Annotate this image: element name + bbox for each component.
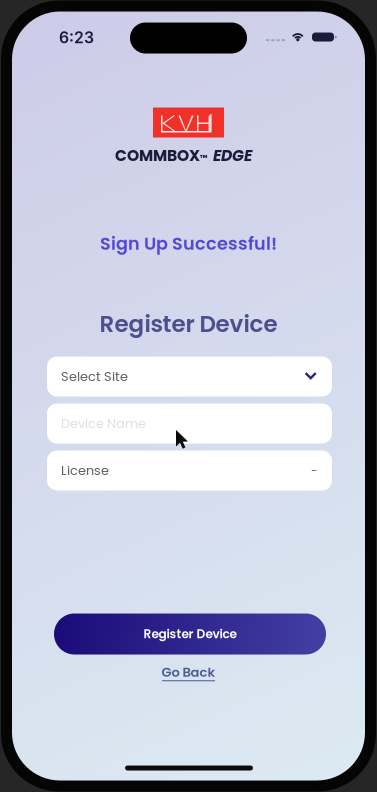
staticText: ™: [200, 152, 208, 164]
staticText: COMMBOX: [115, 145, 200, 166]
staticText: License: [61, 461, 109, 479]
staticText: Register Device: [99, 308, 277, 340]
button[interactable]: Device Name: [47, 403, 332, 443]
staticText: Device Name: [61, 414, 146, 432]
button[interactable]: Register Device: [54, 613, 326, 654]
button[interactable]: License: [47, 450, 332, 490]
staticText: -: [311, 462, 318, 479]
staticText: 6:23: [59, 28, 94, 47]
button[interactable]: Select Site: [47, 356, 332, 396]
staticText: EDGE: [213, 145, 252, 166]
staticText: Select Site: [61, 367, 128, 385]
staticText: Sign Up Successful!: [100, 231, 277, 256]
button[interactable]: Go Back: [12, 664, 365, 682]
staticText: Register Device: [143, 625, 236, 642]
staticText: Go Back: [161, 663, 215, 681]
